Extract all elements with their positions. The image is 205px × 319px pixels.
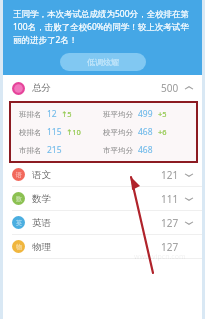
staticText: 英语 xyxy=(32,217,51,229)
staticText: 物 xyxy=(16,243,22,251)
button[interactable]: 语 xyxy=(3,163,202,186)
staticText: 总分 xyxy=(32,82,51,94)
staticText: 语文 xyxy=(32,169,51,181)
staticText: 班排名 xyxy=(19,110,42,119)
other: Collapse xyxy=(185,84,193,92)
staticText: 499 xyxy=(138,108,153,120)
staticText: 市排名 xyxy=(19,146,42,155)
staticText: 英 xyxy=(16,219,22,227)
staticText: www.vipcn.com xyxy=(134,252,186,262)
staticText: 468 xyxy=(138,144,153,156)
staticText: 127 xyxy=(161,240,179,254)
staticText: 班平均分 xyxy=(103,110,133,119)
staticText: +6 xyxy=(158,127,167,137)
staticText: ↑10 xyxy=(66,127,81,137)
staticText: 市平均分 xyxy=(103,146,133,155)
staticText: 127 xyxy=(161,216,179,230)
button[interactable]: 低调炫耀 xyxy=(60,53,146,71)
staticText: 数学 xyxy=(32,193,51,205)
staticText: 121 xyxy=(161,168,179,182)
staticText: 111 xyxy=(161,192,179,206)
staticText: 校平均分 xyxy=(103,128,133,137)
button[interactable]: 物 xyxy=(3,235,202,258)
button[interactable]: 英 xyxy=(3,211,202,234)
staticText: 校排名 xyxy=(19,128,42,137)
staticText: +5 xyxy=(158,109,167,119)
staticText: 12 xyxy=(47,108,57,120)
staticText: 物理 xyxy=(32,241,51,253)
staticText: 低调炫耀 xyxy=(87,57,119,67)
button[interactable]: 数 xyxy=(3,187,202,210)
staticText: 468 xyxy=(138,126,153,138)
staticText: ↑5 xyxy=(61,109,72,119)
staticText: 数 xyxy=(16,195,22,203)
staticText: 500 xyxy=(161,81,179,95)
button[interactable]: 总分 xyxy=(3,75,202,101)
staticText: 王同学，本次考试总成绩为500分，全校排在第100名，击败了全校60%的同学！较… xyxy=(13,8,192,46)
staticText: 语 xyxy=(16,171,22,179)
staticText: 215 xyxy=(47,144,62,156)
staticText: 115 xyxy=(47,126,62,138)
